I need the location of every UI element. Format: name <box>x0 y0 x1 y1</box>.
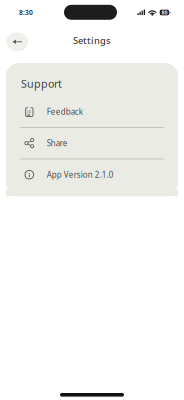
staticText: Support <box>21 77 62 91</box>
staticText: Feedback <box>47 106 83 117</box>
button[interactable]: Back <box>6 30 28 49</box>
staticText: App Version 2.1.0 <box>47 169 114 180</box>
staticText: Share <box>47 138 68 148</box>
staticText: Settings <box>73 34 111 47</box>
staticText: 80 <box>161 9 167 16</box>
button[interactable]: Feedback <box>6 96 178 127</box>
button[interactable]: App Version 2.1.0 <box>6 159 178 190</box>
button[interactable]: Share <box>6 128 178 158</box>
staticText: 8:30 <box>19 8 33 17</box>
